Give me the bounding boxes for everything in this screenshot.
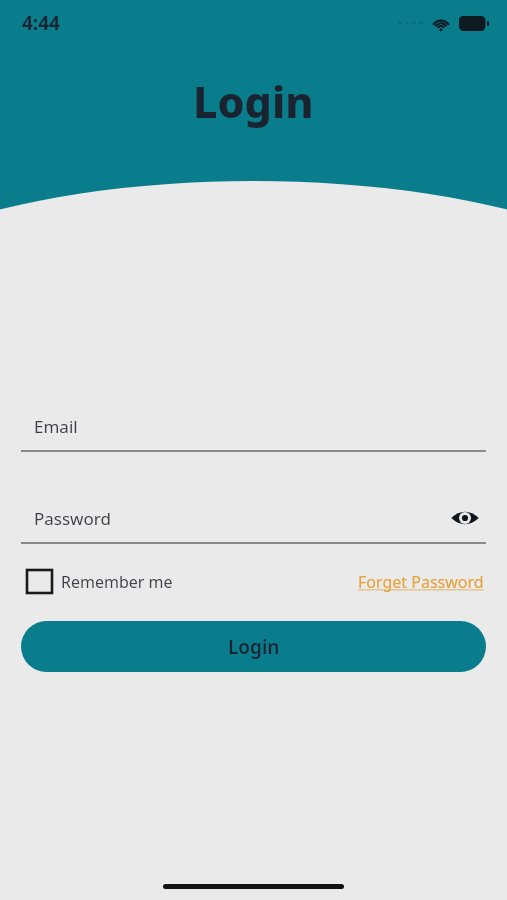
button[interactable]: Email xyxy=(21,402,486,450)
staticText: Password xyxy=(34,507,111,530)
staticText: Login xyxy=(193,72,314,131)
button[interactable]: Remember me xyxy=(21,564,179,599)
button[interactable]: Login xyxy=(21,621,486,672)
staticText: 4:44 xyxy=(22,10,60,36)
button[interactable]: Show password xyxy=(444,497,486,539)
staticText: Email xyxy=(34,415,78,438)
button[interactable]: Forget Password xyxy=(356,565,486,599)
staticText: Remember me xyxy=(61,571,173,593)
button[interactable]: Password xyxy=(21,494,486,542)
staticText: Login xyxy=(228,634,280,660)
staticText: Forget Password xyxy=(358,571,484,593)
